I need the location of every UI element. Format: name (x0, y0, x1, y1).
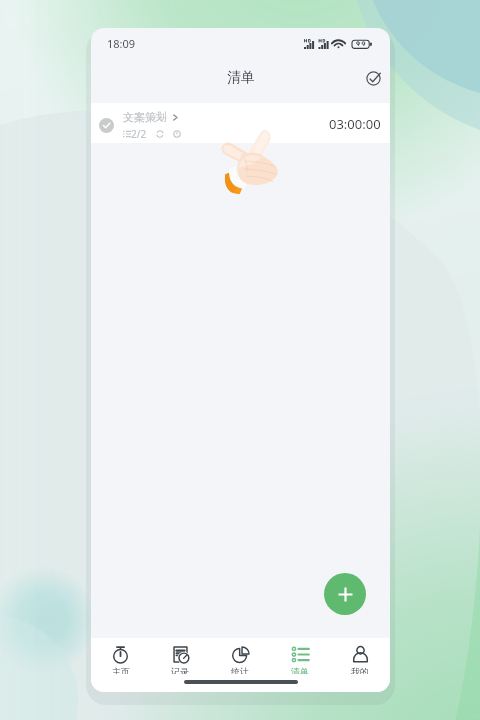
staticText: 文案策划 (123, 110, 167, 124)
button[interactable]: 清单 (270, 638, 330, 674)
staticText: 清单 (291, 666, 309, 674)
button[interactable]: 文案策划 (91, 103, 390, 143)
staticText: 03:00:00 (329, 115, 381, 133)
staticText: 我的 (351, 666, 369, 674)
staticText: 清单 (227, 69, 255, 87)
staticText: 主页 (112, 666, 130, 674)
button[interactable]: 主页 (91, 638, 150, 674)
staticText: 记录 (171, 666, 189, 674)
button[interactable]: 我的 (330, 638, 390, 674)
button[interactable]: 记录 (150, 638, 210, 674)
staticText: 统计 (231, 666, 249, 674)
button[interactable]: Mark complete (359, 64, 387, 92)
staticText: 18:09 (107, 36, 136, 51)
button[interactable]: 统计 (210, 638, 270, 674)
button[interactable]: Add task (324, 573, 366, 615)
staticText: 2/2 (131, 127, 147, 141)
